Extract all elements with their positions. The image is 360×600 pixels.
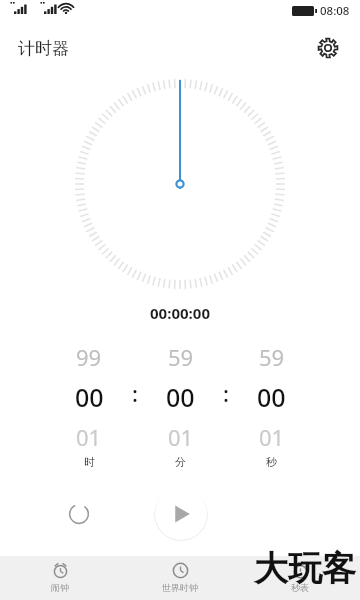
staticText: 世界时钟 [162, 582, 198, 593]
staticText: 秒表 [291, 582, 309, 593]
staticText: 00 [257, 380, 286, 414]
staticText: 00:00:00 [150, 303, 210, 323]
button[interactable]: 世界时钟 [120, 556, 240, 600]
staticText: 01 [168, 422, 194, 452]
staticText: 计时器 [18, 38, 69, 59]
staticText: 00 [166, 380, 195, 414]
staticText: 闹钟 [51, 582, 69, 593]
button[interactable]: 59 [144, 340, 217, 469]
staticText: 大玩客 [254, 547, 356, 590]
staticText: 秒 [266, 455, 277, 469]
button[interactable]: Start [154, 487, 208, 541]
staticText: 08:08 [320, 3, 350, 19]
staticText: 分 [175, 455, 186, 469]
staticText: : [132, 378, 138, 408]
staticText: 01 [76, 422, 102, 452]
button[interactable]: 秒表 [240, 556, 360, 600]
button[interactable]: Reset [57, 492, 101, 536]
staticText: 00 [75, 380, 104, 414]
staticText: 59 [259, 342, 285, 372]
staticText: 59 [168, 342, 194, 372]
button[interactable]: Settings [308, 28, 348, 68]
button[interactable]: 闹钟 [0, 556, 120, 600]
staticText: 时 [84, 455, 95, 469]
button[interactable]: 59 [235, 340, 308, 469]
staticText: 01 [259, 422, 285, 452]
button[interactable]: 99 [52, 340, 126, 469]
staticText: 99 [76, 342, 102, 372]
staticText: : [223, 378, 229, 408]
